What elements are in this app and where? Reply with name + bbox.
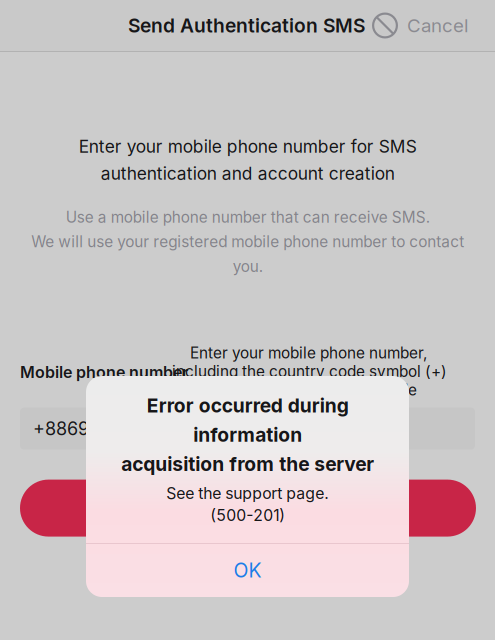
staticText: including the country code symbol (+)	[172, 362, 447, 381]
staticText: Send Authentication SMS	[128, 14, 365, 37]
staticText: and the country code	[263, 381, 417, 399]
staticText: OK	[233, 559, 261, 582]
button[interactable]: Send	[0, 480, 476, 537]
staticText: Mobile phone number	[20, 363, 188, 382]
staticText: Error occurred during information acquis…	[121, 394, 374, 476]
staticText: +886912345678	[33, 418, 173, 439]
staticText: See the support page. (500-201)	[166, 484, 329, 525]
staticText: Enter your mobile phone number,	[190, 344, 427, 362]
button[interactable]: OK	[86, 544, 409, 597]
staticText: Send	[225, 497, 271, 519]
staticText: Enter your mobile phone number for SMS a…	[78, 136, 416, 184]
staticText: Cancel	[407, 14, 469, 37]
staticText: Use a mobile phone number that can recei…	[31, 208, 464, 276]
button[interactable]: Cancel	[372, 4, 495, 46]
